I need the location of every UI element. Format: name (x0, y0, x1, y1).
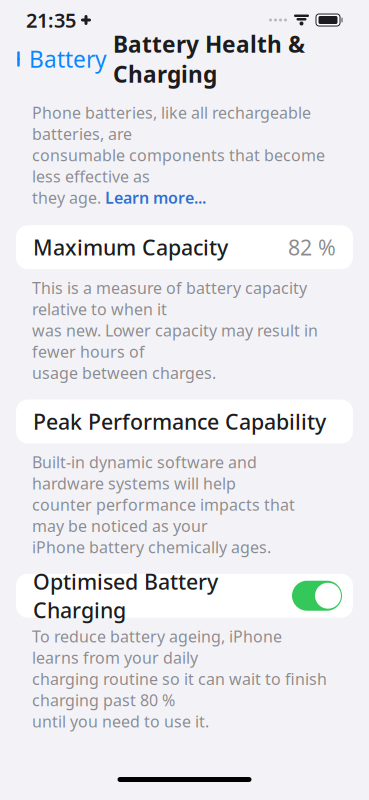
staticText: 82 % (288, 233, 336, 261)
staticText: until you need to use it. (32, 711, 209, 732)
staticText: This is a measure of battery capacity re… (32, 277, 307, 320)
staticText: 21:35 (26, 7, 76, 33)
button[interactable]: Optimised Battery Charging (16, 574, 353, 618)
button[interactable]: Maximum Capacity (16, 225, 353, 269)
staticText: Battery (29, 44, 107, 74)
staticText: Maximum Capacity (33, 233, 228, 261)
staticText: Learn more... (105, 187, 206, 208)
staticText: Built-in dynamic software and hardware s… (32, 451, 257, 494)
staticText: was new. Lower capacity may result in fe… (32, 320, 318, 362)
staticText: Phone batteries, like all rechargeable b… (32, 102, 311, 144)
staticText: charging routine so it can wait to finis… (32, 668, 327, 711)
staticText: counter performance impacts that may be … (32, 494, 295, 536)
button[interactable]: Battery (13, 38, 113, 80)
staticText: Battery Health & Charging (113, 29, 305, 89)
staticText: To reduce battery ageing, iPhone learns … (32, 626, 282, 668)
staticText: Peak Performance Capability (33, 407, 326, 436)
staticText: usage between charges. (32, 362, 216, 383)
staticText: consumable components that become less e… (32, 144, 325, 187)
staticText: iPhone battery chemically ages. (32, 536, 271, 558)
button[interactable]: Peak Performance Capability (16, 399, 353, 443)
staticText: they age. (32, 187, 101, 208)
staticText: Optimised Battery Charging (33, 567, 218, 624)
button[interactable]: Learn more... (105, 187, 206, 208)
